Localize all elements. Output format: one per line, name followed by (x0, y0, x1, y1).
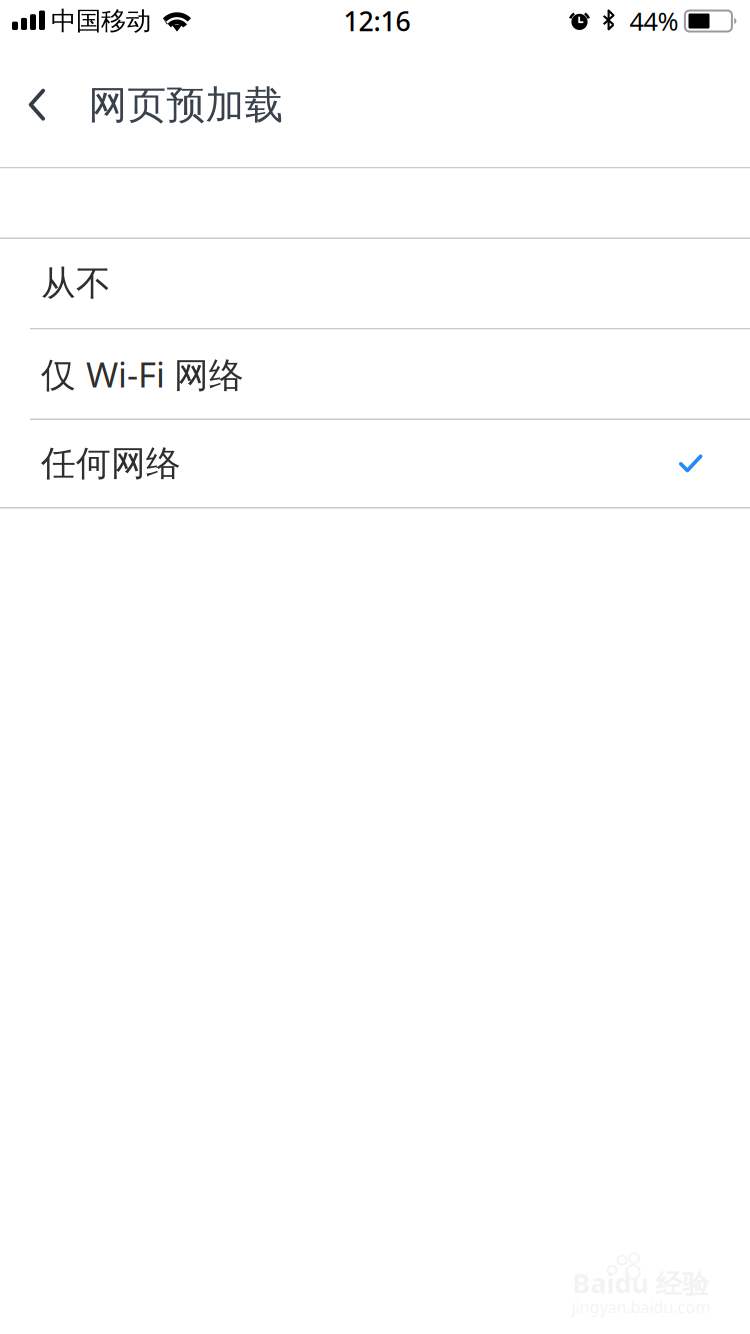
staticText: Baidu 经验 (572, 1265, 709, 1301)
button[interactable]: 从不 (0, 239, 750, 328)
staticText: 从不 (41, 262, 111, 305)
button[interactable]: Back (0, 44, 76, 162)
staticText: 仅 Wi-Fi 网络 (41, 351, 244, 397)
staticText: 12:16 (343, 3, 410, 39)
button[interactable]: 仅 Wi-Fi 网络 (0, 329, 750, 418)
staticText: 44% (629, 4, 678, 38)
staticText: 网页预加载 (88, 81, 283, 129)
staticText: 中国移动 (51, 5, 151, 36)
staticText: 任何网络 (41, 442, 181, 485)
button[interactable]: 任何网络 (0, 420, 750, 507)
staticText: jingyan.baidu.com (571, 1296, 710, 1318)
